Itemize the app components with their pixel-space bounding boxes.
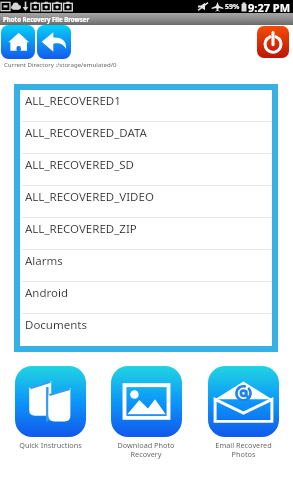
staticText: Photo Recovery File Browser [3, 15, 90, 23]
staticText: 59% [225, 2, 240, 12]
button[interactable]: Home [1, 25, 35, 59]
staticText: Download Photo Recovery [117, 440, 175, 460]
button[interactable]: Quick Instructions [9, 366, 91, 450]
button[interactable]: Back [37, 25, 71, 59]
button[interactable]: ALL_RECOVERED_ZIP [20, 218, 272, 250]
button[interactable]: ALL_RECOVERED1 [20, 90, 272, 122]
staticText: ALL_RECOVERED_DATA [25, 125, 147, 141]
button[interactable]: Power [257, 26, 289, 58]
button[interactable]: ALL_RECOVERED_VIDEO [20, 186, 272, 218]
staticText: ALL_RECOVERED_VIDEO [25, 189, 154, 205]
staticText: ALL_RECOVERED_ZIP [25, 221, 137, 237]
button[interactable]: Alarms [20, 250, 272, 282]
staticText: ALL_RECOVERED1 [25, 93, 121, 109]
button[interactable]: Email Recovered Photos [202, 366, 284, 460]
staticText: Documents [25, 317, 87, 333]
staticText: Current Directory :/storage/emulated/0 [4, 60, 117, 68]
staticText: Email Recovered Photos [215, 440, 272, 460]
button[interactable]: ALL_RECOVERED_DATA [20, 122, 272, 154]
button[interactable]: Android [20, 282, 272, 314]
button[interactable]: ALL_RECOVERED_SD [20, 154, 272, 186]
staticText: Android [25, 285, 69, 301]
button[interactable]: Download Photo Recovery [105, 366, 187, 460]
staticText: Alarms [25, 253, 63, 269]
button[interactable]: Documents [20, 314, 272, 346]
staticText: Quick Instructions [19, 440, 82, 450]
staticText: ALL_RECOVERED_SD [25, 157, 135, 173]
staticText: 9:27 PM [248, 0, 291, 13]
